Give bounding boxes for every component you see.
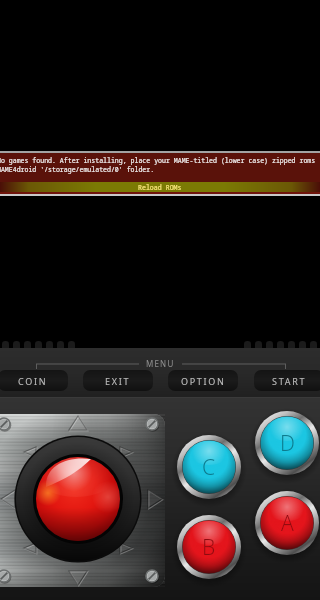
button[interactable]: Joystick xyxy=(15,437,141,563)
button[interactable]: EXIT xyxy=(83,370,153,391)
staticText: MENU xyxy=(146,358,175,369)
staticText: A xyxy=(281,509,294,538)
staticText: Reload ROMs xyxy=(138,183,182,192)
button[interactable]: START xyxy=(254,370,320,391)
staticText: D xyxy=(280,429,295,458)
staticText: MAME4droid '/storage/emulated/0' folder. xyxy=(0,165,155,174)
button[interactable]: A xyxy=(256,492,318,554)
button[interactable]: C xyxy=(178,436,240,498)
staticText: START xyxy=(272,375,307,387)
staticText: C xyxy=(202,453,216,482)
staticText: EXIT xyxy=(105,375,131,387)
button[interactable]: Reload ROMs xyxy=(0,182,320,192)
button[interactable]: B xyxy=(178,516,240,578)
button[interactable]: D xyxy=(256,412,318,474)
staticText: COIN xyxy=(18,375,48,387)
button[interactable]: COIN xyxy=(0,370,68,391)
button[interactable]: OPTION xyxy=(168,370,238,391)
staticText: B xyxy=(202,533,216,562)
staticText: OPTION xyxy=(181,375,226,387)
staticText: No games found. After installing, place … xyxy=(0,156,317,165)
